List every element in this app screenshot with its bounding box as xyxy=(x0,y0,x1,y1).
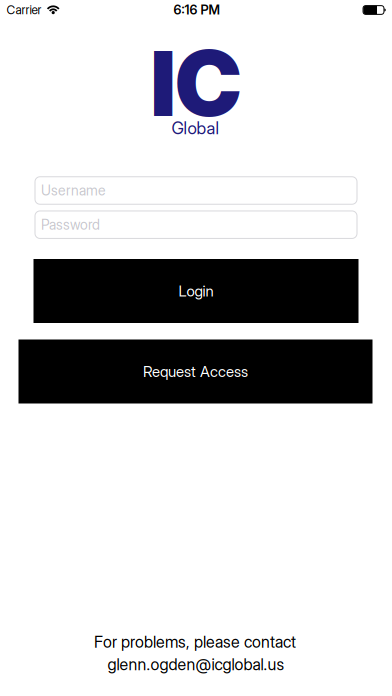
button[interactable]: Username xyxy=(35,177,357,204)
staticText: Password xyxy=(41,216,100,233)
staticText: For problems, please contact xyxy=(94,632,296,652)
staticText: Username xyxy=(41,182,106,199)
staticText: Carrier xyxy=(6,2,41,17)
staticText: 6:16 PM xyxy=(173,2,219,18)
button[interactable]: Request Access xyxy=(18,339,372,403)
staticText: IC xyxy=(150,29,241,138)
staticText: Login xyxy=(178,282,213,300)
button[interactable]: Password xyxy=(35,211,357,238)
button[interactable]: Login xyxy=(33,259,358,323)
staticText: Request Access xyxy=(143,362,248,380)
staticText: glenn.ogden@icglobal.us xyxy=(107,655,284,674)
staticText: Global xyxy=(171,118,219,138)
